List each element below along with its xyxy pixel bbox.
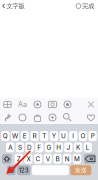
staticText: C (36, 155, 41, 163)
button[interactable]: Y (50, 131, 58, 141)
button[interactable]: Camera (45, 98, 60, 110)
button[interactable]: S (16, 142, 24, 152)
staticText: Aa (18, 100, 27, 109)
button[interactable] (32, 165, 69, 175)
button[interactable]: C (34, 154, 42, 164)
staticText: N (65, 155, 70, 163)
button[interactable]: L (84, 142, 92, 152)
button[interactable]: R (30, 131, 39, 141)
staticText: B (55, 155, 59, 163)
staticText: H (56, 143, 61, 151)
button[interactable]: W (11, 131, 19, 141)
staticText: ☺ (8, 166, 15, 174)
button[interactable]: A (6, 142, 14, 152)
button[interactable]: E (21, 131, 29, 141)
button[interactable]: 发送 (70, 165, 91, 175)
button[interactable]: I (69, 131, 77, 141)
button[interactable]: O (79, 131, 87, 141)
staticText: L (86, 143, 90, 151)
button[interactable]: Delete (84, 154, 96, 164)
button[interactable]: K (74, 142, 82, 152)
staticText: F (37, 143, 41, 151)
button[interactable]: H (55, 142, 63, 152)
staticText: 完成 (82, 2, 94, 10)
staticText: T (42, 132, 46, 140)
button[interactable]: V (44, 154, 52, 164)
staticText: 文字版 (6, 2, 24, 10)
staticText: O (80, 132, 85, 140)
staticText: W (12, 132, 18, 140)
staticText: Q (3, 132, 8, 140)
button[interactable]: X (24, 154, 33, 164)
button[interactable]: B (53, 154, 62, 164)
button[interactable]: G (45, 142, 53, 152)
button[interactable]: J (64, 142, 73, 152)
staticText: V (46, 155, 50, 163)
staticText: A (8, 143, 12, 151)
staticText: R (32, 132, 36, 140)
button[interactable]: 完成 (76, 0, 98, 12)
staticText: E (23, 132, 27, 140)
button[interactable]: Record (60, 98, 75, 110)
button[interactable]: Shop (30, 111, 45, 123)
button[interactable]: N (63, 154, 71, 164)
button[interactable]: M (73, 154, 81, 164)
button[interactable]: Attach (0, 111, 15, 123)
button[interactable]: Close (84, 98, 98, 110)
staticText: S (18, 143, 22, 151)
staticText: 发送 (75, 166, 87, 174)
button[interactable]: Q (1, 131, 9, 141)
button[interactable]: Table (0, 98, 15, 110)
button[interactable]: 文字版 (0, 0, 24, 12)
staticText: Z (17, 155, 21, 163)
button[interactable]: Shift (2, 154, 12, 164)
button[interactable]: Sticker (30, 98, 45, 110)
staticText: P (91, 132, 95, 140)
staticText: J (66, 143, 70, 151)
button[interactable]: T (40, 131, 48, 141)
staticText: K (76, 143, 80, 151)
button[interactable]: Like (84, 111, 98, 123)
button[interactable]: Location (45, 111, 60, 123)
staticText: Y (52, 132, 56, 140)
button[interactable]: D (25, 142, 34, 152)
staticText: D (27, 143, 32, 151)
button[interactable]: 123 (17, 165, 30, 175)
staticText: X (26, 155, 30, 163)
button[interactable]: Z (15, 154, 23, 164)
staticText: G (46, 143, 51, 151)
button[interactable]: U (59, 131, 68, 141)
staticText: M (74, 155, 80, 163)
button[interactable]: ☺ (7, 165, 16, 175)
button[interactable]: Aa (15, 98, 30, 110)
button[interactable]: F (35, 142, 43, 152)
button[interactable]: Search (60, 111, 75, 123)
staticText: 123 (19, 166, 29, 174)
button[interactable]: P (88, 131, 97, 141)
button[interactable]: Emoji (15, 111, 30, 123)
staticText: U (61, 132, 66, 140)
staticText: I (72, 132, 74, 140)
